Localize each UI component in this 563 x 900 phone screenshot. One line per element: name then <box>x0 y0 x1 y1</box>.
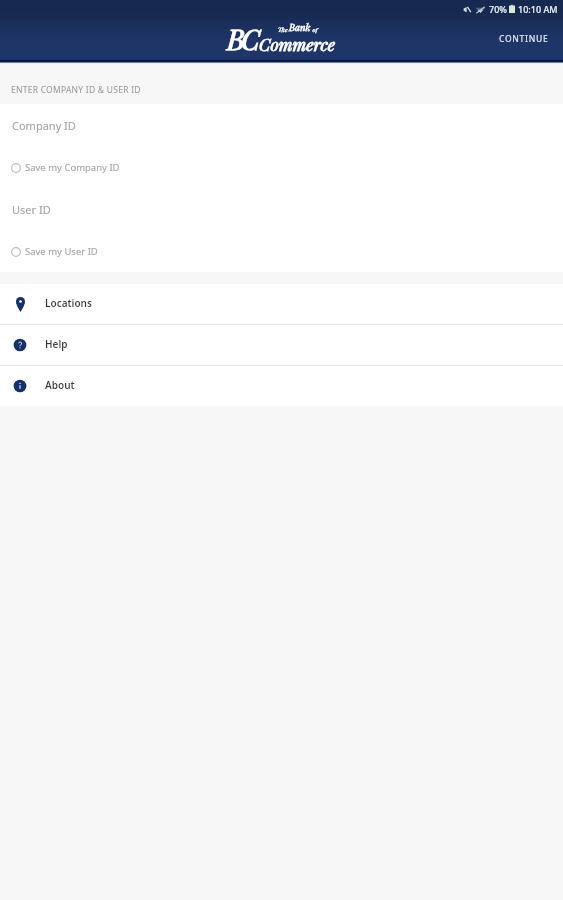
other: Help <box>12 337 28 353</box>
staticText: BC <box>227 20 257 57</box>
staticText: User ID <box>12 202 51 217</box>
staticText: About <box>45 378 75 392</box>
button[interactable]: Help <box>0 325 563 365</box>
button[interactable]: Company ID <box>0 104 563 146</box>
staticText: 10:10 AM <box>518 3 558 15</box>
staticText: of <box>311 26 318 34</box>
staticText: Bank <box>289 21 311 34</box>
staticText: Help <box>45 337 68 351</box>
staticText: Save my User ID <box>25 245 98 258</box>
button[interactable]: Save my User ID <box>0 230 563 272</box>
staticText: 70% <box>489 3 507 15</box>
staticText: Commerce <box>259 33 336 56</box>
button[interactable]: User ID <box>0 188 563 230</box>
button[interactable]: About <box>0 366 563 406</box>
button[interactable]: CONTINUE <box>485 20 563 58</box>
button[interactable]: Locations <box>0 284 563 324</box>
other: About <box>12 378 28 394</box>
other: Locations <box>12 296 28 312</box>
staticText: The <box>278 26 289 34</box>
staticText: Locations <box>45 296 92 310</box>
staticText: Company ID <box>12 118 76 133</box>
staticText: CONTINUE <box>499 33 549 45</box>
staticText: ENTER COMPANY ID & USER ID <box>11 84 141 96</box>
staticText: Save my Company ID <box>25 161 120 174</box>
button[interactable]: Save my Company ID <box>0 146 563 188</box>
